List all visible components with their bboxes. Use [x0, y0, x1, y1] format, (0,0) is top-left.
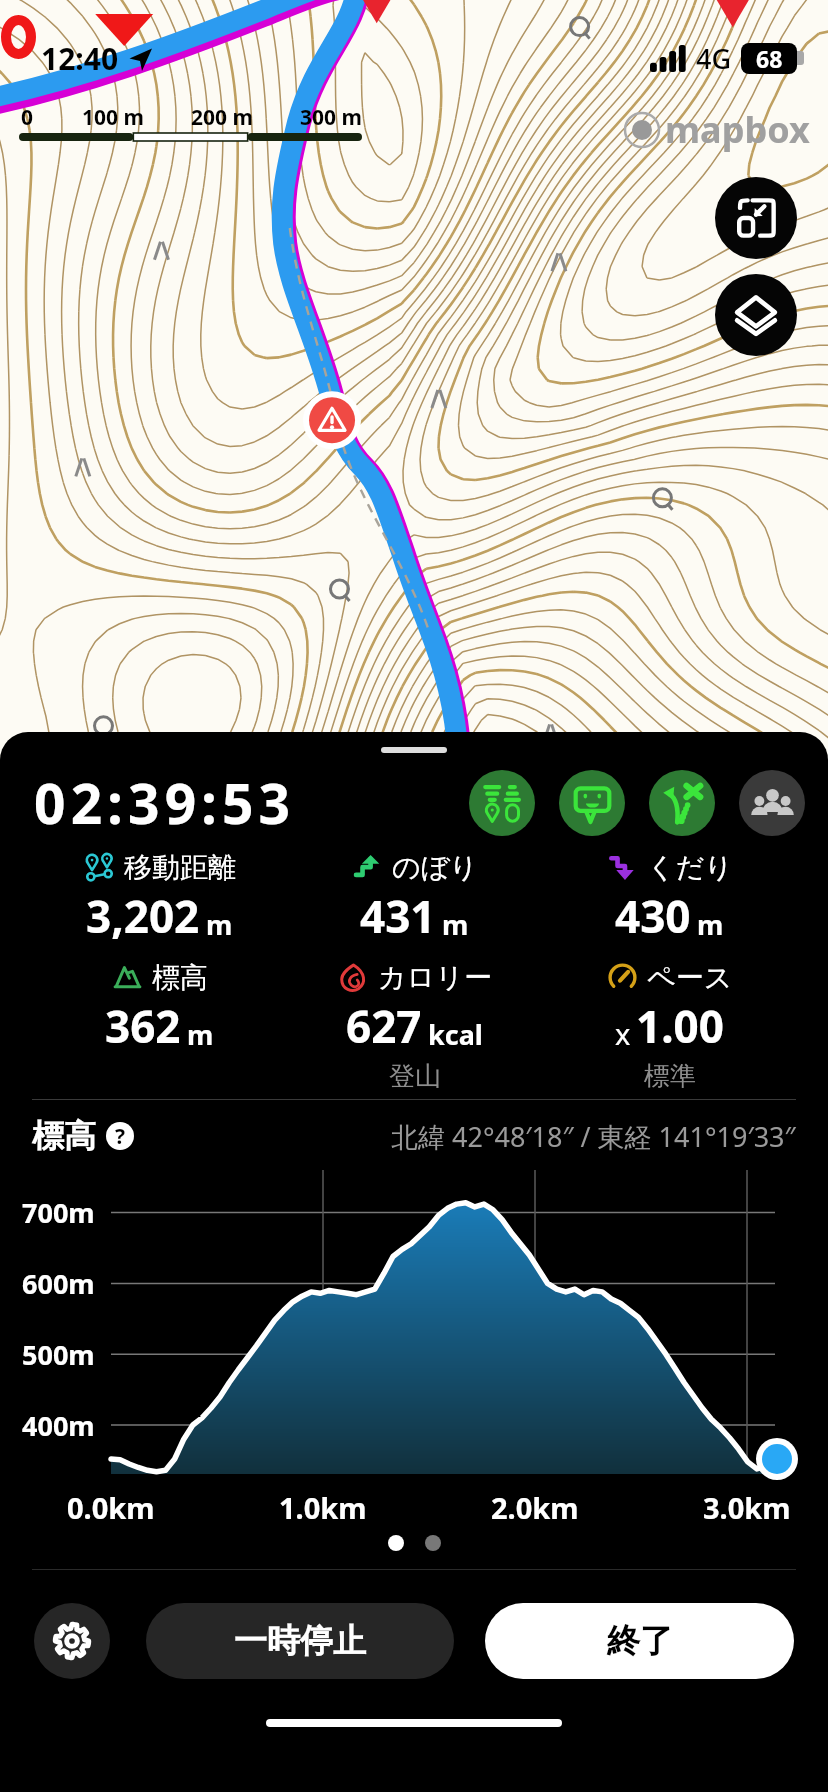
staticText: 標高	[152, 960, 208, 995]
staticText: 430	[615, 886, 691, 946]
staticText: 一時停止	[234, 1620, 366, 1662]
staticText: ?	[115, 1122, 126, 1150]
staticText: 標高	[32, 1116, 96, 1156]
staticText: m	[442, 906, 469, 943]
staticText: 362	[105, 996, 181, 1056]
button[interactable]: 終了	[485, 1603, 794, 1679]
staticText: 627	[346, 996, 422, 1056]
staticText: ペース	[647, 960, 733, 995]
button[interactable]: Layers	[715, 274, 797, 356]
staticText: 300 m	[300, 103, 362, 132]
button[interactable]: Navigation	[649, 770, 715, 836]
staticText: m	[206, 906, 233, 943]
button[interactable]: Memo	[559, 770, 625, 836]
staticText: 北緯 42°48′18″ / 東経 141°19′33″	[391, 1118, 796, 1155]
staticText: mapbox	[665, 105, 810, 154]
staticText: 登山	[389, 1060, 441, 1093]
button[interactable]: Settings	[34, 1603, 110, 1679]
staticText: 0	[21, 103, 34, 132]
staticText: 3,202	[86, 886, 200, 946]
staticText: 移動距離	[124, 850, 236, 885]
staticText: m	[187, 1016, 214, 1053]
staticText: 4G	[696, 40, 732, 77]
button[interactable]: Route plan	[469, 770, 535, 836]
staticText: 12:40	[41, 38, 119, 79]
staticText: 68	[756, 43, 783, 74]
button[interactable]: 一時停止	[146, 1603, 454, 1679]
staticText: くだり	[647, 850, 733, 885]
staticText: 標準	[644, 1060, 696, 1093]
button[interactable]: Fit screen	[715, 177, 797, 259]
staticText: 200 m	[191, 103, 253, 132]
button[interactable]: Help	[106, 1122, 134, 1150]
staticText: 431	[360, 886, 436, 946]
staticText: のぼり	[392, 850, 478, 885]
staticText: カロリー	[378, 960, 492, 995]
staticText: 100 m	[82, 103, 144, 132]
staticText: 02:39:53	[34, 765, 296, 840]
staticText: m	[697, 906, 724, 943]
staticText: x	[615, 1014, 631, 1053]
staticText: 1.00	[636, 996, 724, 1056]
staticText: kcal	[428, 1016, 483, 1053]
button[interactable]: Members	[739, 770, 805, 836]
staticText: 終了	[607, 1620, 673, 1662]
